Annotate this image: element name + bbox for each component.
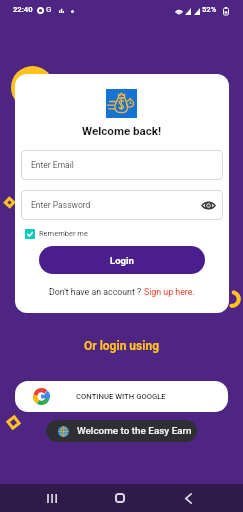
button[interactable]: Login — [39, 246, 205, 274]
other: Show password — [202, 201, 215, 210]
staticText: 52% — [202, 5, 217, 14]
staticText: 22:40 — [13, 5, 33, 14]
staticText: Remember me — [39, 229, 88, 238]
button[interactable]: CONTINUE WITH GOOGLE — [15, 381, 228, 412]
button[interactable]: Enter Email — [21, 150, 223, 180]
button[interactable]: Home — [104, 484, 136, 512]
button[interactable]: Sign up here. — [144, 287, 195, 297]
button[interactable]: Back — [172, 484, 204, 512]
staticText: Enter Email — [31, 160, 74, 170]
staticText: Don't have an account ? — [49, 287, 144, 297]
staticText: CONTINUE WITH GOOGLE — [76, 392, 166, 401]
staticText: Or login using — [84, 339, 159, 353]
staticText: Welcome to the Easy Earn — [77, 425, 192, 437]
staticText: Enter Password — [31, 200, 91, 210]
staticText: Login — [110, 255, 134, 266]
button[interactable]: Enter Password — [21, 190, 223, 220]
button[interactable]: Remember me — [25, 228, 88, 239]
button[interactable]: Recent apps — [36, 484, 68, 512]
staticText: Welcome back! — [82, 124, 162, 138]
staticText: G — [46, 5, 52, 14]
